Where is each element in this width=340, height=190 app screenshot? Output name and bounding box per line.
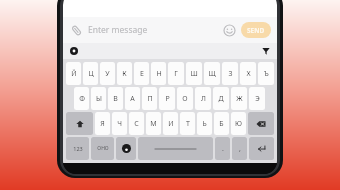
button[interactable]: Г — [168, 62, 184, 85]
button[interactable]: З — [222, 62, 238, 85]
button[interactable]: П — [142, 87, 157, 110]
button[interactable]: Space — [138, 137, 213, 160]
staticText: Т — [186, 119, 190, 129]
button[interactable]: Emoji — [223, 24, 236, 37]
staticText: Enter message — [88, 24, 223, 36]
button[interactable]: Enter — [249, 137, 274, 160]
button[interactable]: Ь — [197, 112, 212, 135]
button[interactable]: 123 — [66, 137, 89, 160]
staticText: Щ — [208, 69, 216, 79]
button[interactable]: Ц — [83, 62, 98, 85]
button[interactable]: Э — [249, 87, 265, 110]
button[interactable]: Д — [213, 87, 229, 110]
staticText: Ы — [96, 94, 102, 104]
staticText: А — [130, 94, 135, 104]
staticText: Е — [140, 69, 144, 79]
staticText: К — [122, 69, 127, 79]
button[interactable]: М — [146, 112, 161, 135]
staticText: Р — [165, 94, 170, 104]
button[interactable]: Я — [95, 112, 110, 135]
staticText: Х — [246, 69, 251, 79]
staticText: М — [150, 119, 157, 129]
button[interactable]: В — [108, 87, 123, 110]
staticText: Ц — [88, 69, 94, 79]
staticText: Й — [71, 69, 77, 79]
staticText: 123 — [73, 145, 83, 152]
staticText: П — [147, 94, 153, 104]
button[interactable]: , — [232, 137, 247, 160]
button[interactable]: Ъ — [258, 62, 274, 85]
button[interactable]: Л — [195, 87, 211, 110]
staticText: З — [228, 69, 233, 79]
staticText: Ф — [79, 94, 85, 104]
button[interactable]: Е — [134, 62, 149, 85]
button[interactable]: SEND — [241, 22, 271, 38]
staticText: Б — [219, 119, 224, 129]
button[interactable]: Ы — [91, 87, 106, 110]
button[interactable]: Filter suggestions — [260, 45, 272, 57]
staticText: Г — [174, 69, 178, 79]
staticText: Ю — [235, 119, 242, 129]
staticText: Ъ — [264, 69, 269, 79]
staticText: О — [182, 94, 188, 104]
button[interactable]: Shift — [66, 112, 93, 135]
button[interactable]: Н — [151, 62, 166, 85]
button[interactable]: Ж — [231, 87, 247, 110]
staticText: Л — [201, 94, 206, 104]
button[interactable]: . — [215, 137, 230, 160]
button[interactable]: А — [125, 87, 140, 110]
button[interactable]: Keyboard settings — [68, 45, 80, 57]
button[interactable]: С — [129, 112, 144, 135]
staticText: Э — [255, 94, 260, 104]
button[interactable]: Ю — [231, 112, 246, 135]
button[interactable]: ОНО — [91, 137, 114, 160]
staticText: У — [105, 69, 110, 79]
staticText: . — [222, 144, 224, 154]
button[interactable]: Р — [159, 87, 175, 110]
button[interactable]: Ф — [74, 87, 89, 110]
button[interactable]: Х — [240, 62, 256, 85]
staticText: Я — [100, 119, 105, 129]
staticText: Д — [218, 94, 224, 104]
staticText: Ь — [202, 119, 207, 129]
button[interactable]: И — [163, 112, 178, 135]
button[interactable]: Ч — [112, 112, 127, 135]
staticText: ОНО — [97, 145, 109, 152]
button[interactable]: К — [117, 62, 132, 85]
staticText: И — [168, 119, 174, 129]
staticText: Н — [156, 69, 162, 79]
button[interactable]: Й — [66, 62, 81, 85]
staticText: В — [113, 94, 118, 104]
staticText: , — [239, 144, 241, 154]
button[interactable]: У — [100, 62, 115, 85]
staticText: SEND — [247, 26, 265, 35]
staticText: Ш — [190, 69, 198, 79]
button[interactable]: Щ — [204, 62, 220, 85]
button[interactable]: Ш — [186, 62, 202, 85]
button[interactable]: Б — [214, 112, 229, 135]
button[interactable]: Т — [180, 112, 195, 135]
staticText: Ж — [236, 94, 243, 104]
staticText: С — [134, 119, 139, 129]
button[interactable]: Attach file — [69, 23, 83, 37]
staticText: Ч — [117, 119, 122, 129]
button[interactable]: О — [177, 87, 193, 110]
button[interactable]: Backspace — [248, 112, 274, 135]
button[interactable]: Emoji keyboard — [116, 137, 136, 160]
